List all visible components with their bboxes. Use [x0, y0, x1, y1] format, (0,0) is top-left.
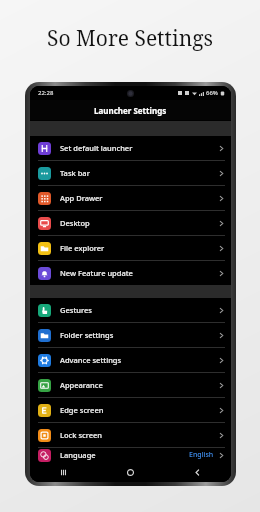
- staticText: 22:28: [38, 89, 54, 97]
- staticText: Gestures: [60, 305, 218, 315]
- button[interactable]: Set default launcher: [30, 136, 231, 160]
- staticText: File explorer: [60, 243, 218, 253]
- staticText: New Feature update: [60, 268, 218, 278]
- staticText: Advance settings: [60, 355, 218, 365]
- staticText: Language: [60, 450, 189, 460]
- button[interactable]: Language: [30, 447, 231, 462]
- button[interactable]: Back: [164, 462, 231, 482]
- staticText: Launcher Settings: [94, 105, 167, 116]
- button[interactable]: File explorer: [30, 235, 231, 260]
- staticText: Set default launcher: [60, 143, 218, 153]
- button[interactable]: Lock screen: [30, 422, 231, 447]
- button[interactable]: Gestures: [30, 298, 231, 322]
- staticText: English: [189, 450, 214, 460]
- staticText: Edge screen: [60, 405, 218, 415]
- staticText: 66%: [206, 89, 218, 97]
- button[interactable]: Home: [97, 462, 164, 482]
- button[interactable]: Edge screen: [30, 397, 231, 422]
- button[interactable]: Recent apps: [30, 462, 97, 482]
- staticText: So More Settings: [47, 24, 213, 53]
- staticText: Task bar: [60, 168, 218, 178]
- button[interactable]: Folder settings: [30, 322, 231, 347]
- button[interactable]: Task bar: [30, 160, 231, 185]
- button[interactable]: Desktop: [30, 210, 231, 235]
- staticText: Appearance: [60, 380, 218, 390]
- staticText: App Drawer: [60, 193, 218, 203]
- staticText: Folder settings: [60, 330, 218, 340]
- staticText: Desktop: [60, 218, 218, 228]
- button[interactable]: Advance settings: [30, 347, 231, 372]
- button[interactable]: App Drawer: [30, 185, 231, 210]
- button[interactable]: New Feature update: [30, 260, 231, 285]
- button[interactable]: Appearance: [30, 372, 231, 397]
- staticText: Lock screen: [60, 430, 218, 440]
